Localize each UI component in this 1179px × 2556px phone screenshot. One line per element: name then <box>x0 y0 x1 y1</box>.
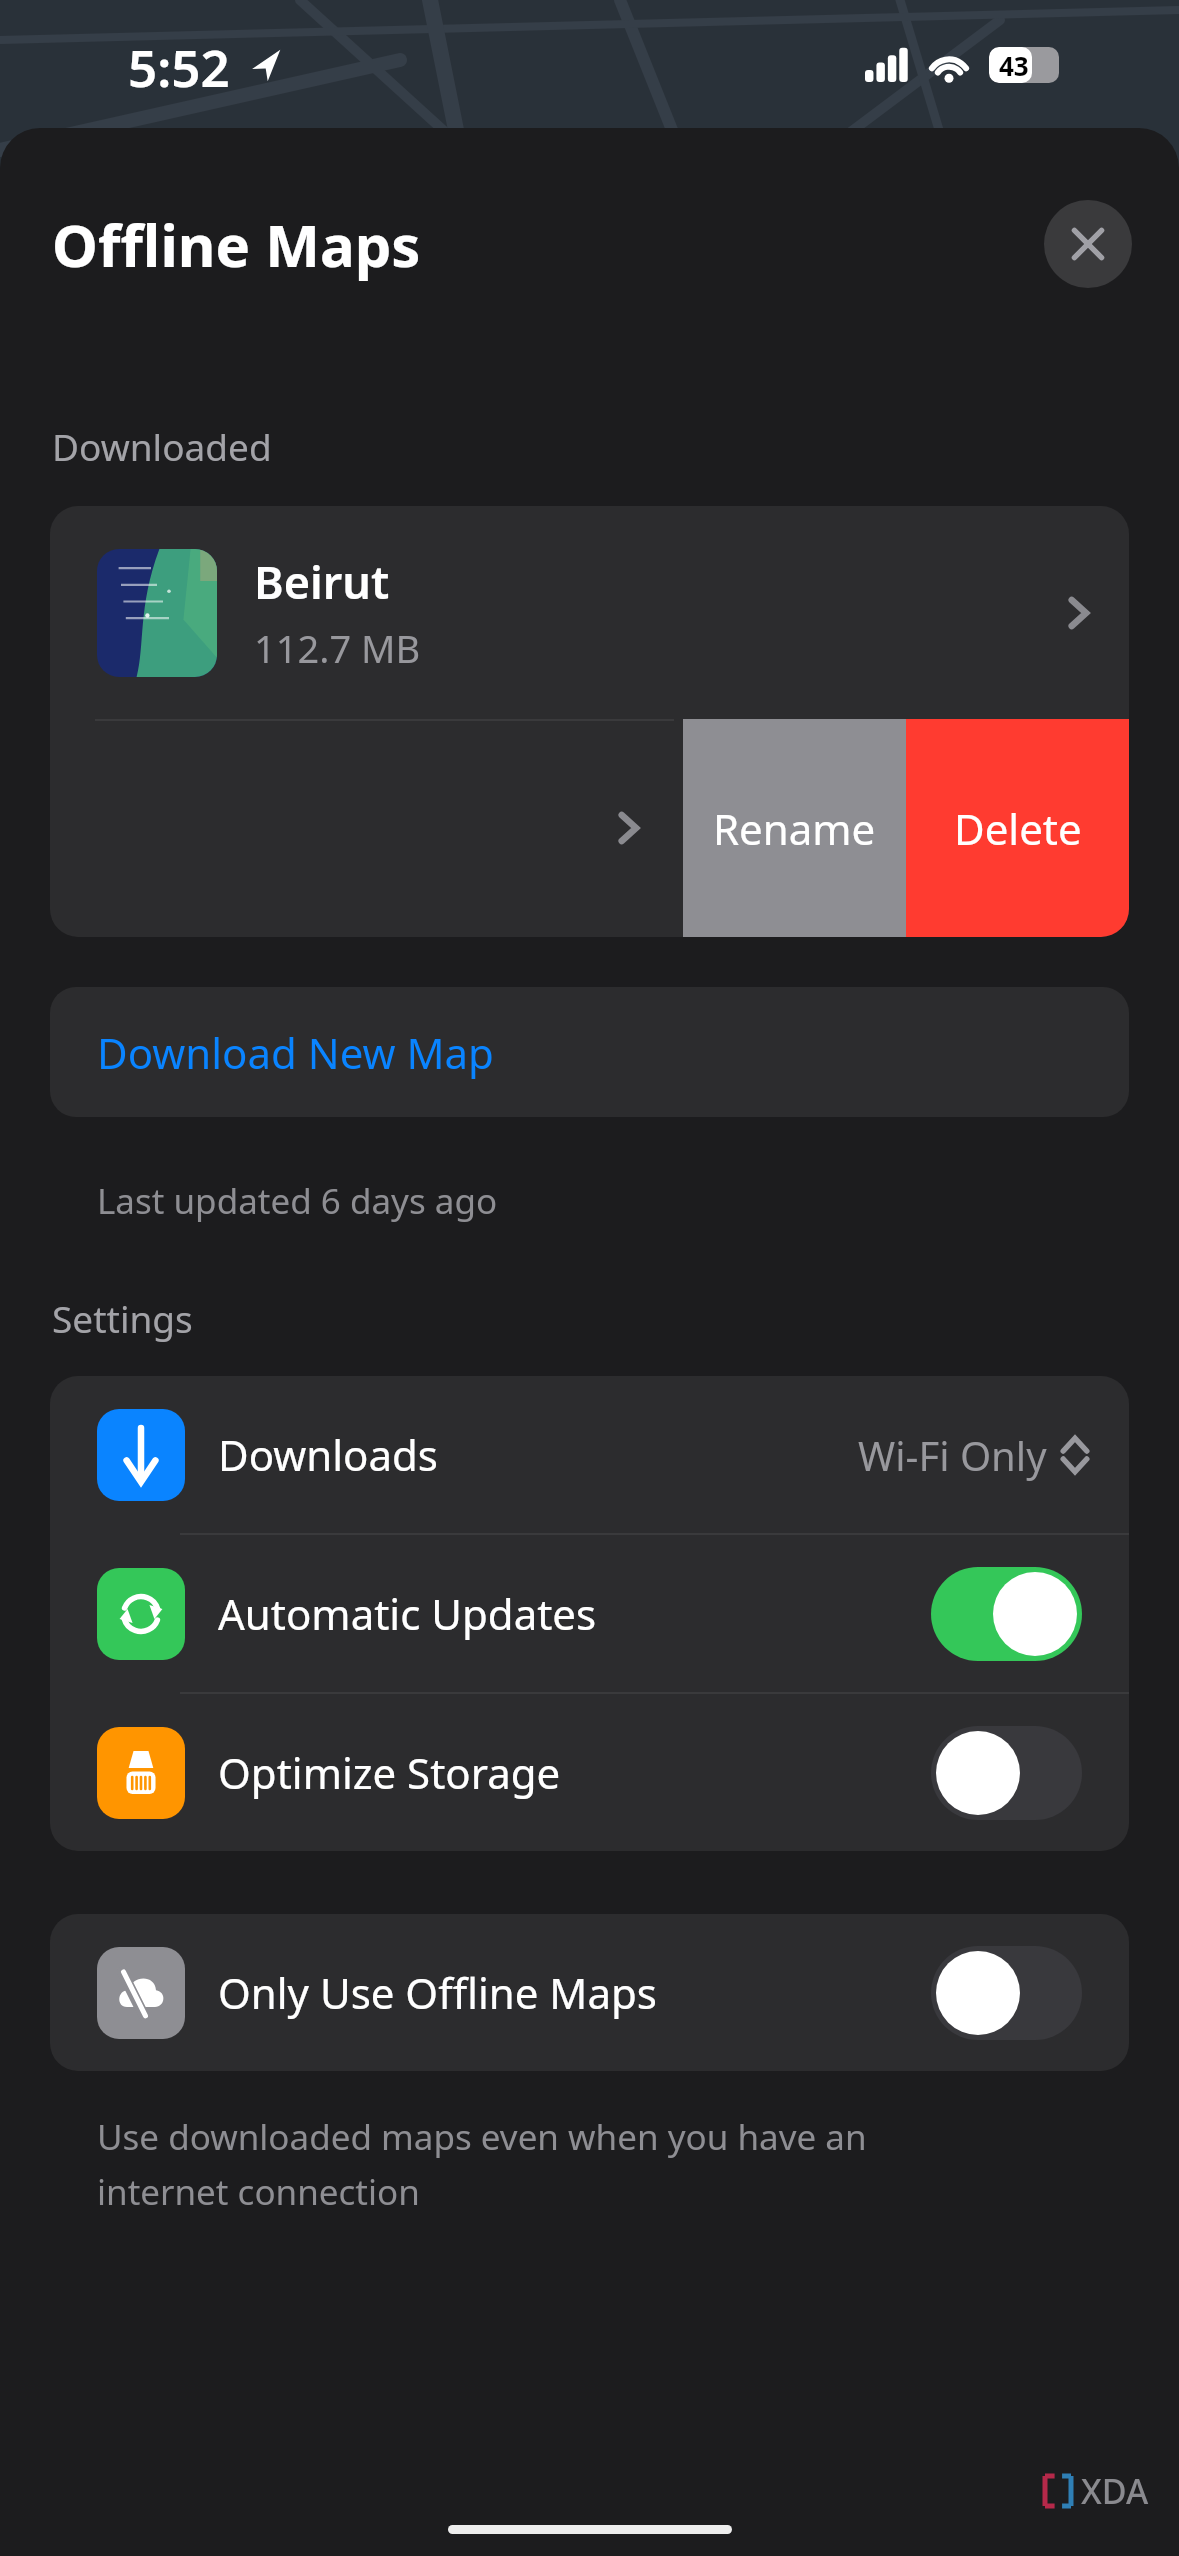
button[interactable]: Off <box>931 1946 1082 2040</box>
staticText: Downloads <box>218 1426 858 1483</box>
staticText: Beirut <box>254 551 390 612</box>
button[interactable]: Delete <box>906 719 1129 937</box>
staticText: Rename <box>713 800 876 857</box>
button[interactable]: Optimize Storage <box>50 1694 1129 1851</box>
button[interactable]: Close <box>1044 200 1132 288</box>
button[interactable]: Automatic Updates <box>50 1535 1129 1692</box>
button[interactable]: Off <box>931 1726 1082 1820</box>
button[interactable]: Downloads <box>50 1376 1129 1533</box>
staticText: Offline Maps <box>52 205 421 284</box>
button[interactable]: Download New Map <box>50 987 1129 1117</box>
staticText: 112.7 MB <box>254 622 421 674</box>
staticText: Use downloaded maps even when you have a… <box>97 2113 867 2215</box>
staticText: Automatic Updates <box>218 1585 931 1642</box>
staticText: 43 <box>999 48 1029 83</box>
button[interactable]: Beirut <box>50 506 1129 719</box>
staticText: Optimize Storage <box>218 1744 931 1801</box>
staticText: Wi-Fi Only <box>858 1428 1047 1482</box>
staticText: Only Use Offline Maps <box>218 1964 931 2021</box>
staticText: Delete <box>954 800 1082 857</box>
staticText: Downloaded <box>52 421 272 471</box>
button[interactable]: On <box>931 1567 1082 1661</box>
staticText: Download New Map <box>97 1024 494 1081</box>
staticText: XDA <box>1081 2468 1149 2514</box>
staticText: Settings <box>52 1293 193 1343</box>
button[interactable]: Rename <box>683 719 906 937</box>
button[interactable]: Only Use Offline Maps <box>50 1914 1129 2071</box>
staticText: 5:52 <box>128 32 230 101</box>
staticText: Last updated 6 days ago <box>97 1177 498 1225</box>
